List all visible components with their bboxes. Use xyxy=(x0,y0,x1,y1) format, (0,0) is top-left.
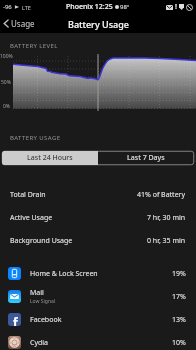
staticText: Battery Usage xyxy=(68,18,129,30)
staticText: 19% xyxy=(172,269,186,279)
staticText: 10% xyxy=(172,338,186,348)
staticText: BATTERY LEVEL xyxy=(10,42,58,50)
button[interactable]: Usage xyxy=(0,15,43,32)
staticText: Low Signal xyxy=(30,298,56,305)
button[interactable]: Background Usage xyxy=(0,229,196,252)
staticText: Phoenix 12:25 xyxy=(66,2,113,12)
staticText: Total Drain xyxy=(10,190,46,200)
button[interactable]: Last 7 Days xyxy=(98,151,194,165)
staticText: 7 hr, 30 min xyxy=(147,213,186,223)
staticText: 0% xyxy=(3,103,11,110)
staticText: 0 hr, 35 min xyxy=(147,236,186,246)
staticText: 50% xyxy=(1,79,11,86)
staticText: 13% xyxy=(172,315,186,325)
staticText: LTE xyxy=(22,4,31,11)
staticText: ! xyxy=(175,2,177,12)
staticText: Background Usage xyxy=(10,236,73,246)
staticText: Home & Lock Screen xyxy=(30,269,98,279)
staticText: 17% xyxy=(172,292,186,302)
button[interactable]: Home & Lock Screen xyxy=(0,262,196,285)
staticText: 41% of Battery xyxy=(137,190,186,200)
button[interactable]: Active Usage xyxy=(0,206,196,229)
staticText: Last 7 Days xyxy=(127,153,165,163)
staticText: -96 xyxy=(3,3,12,11)
button[interactable]: f xyxy=(0,308,196,331)
staticText: Active Usage xyxy=(10,213,53,223)
staticText: Facebook xyxy=(30,315,62,325)
button[interactable]: Last 24 Hours xyxy=(2,151,98,165)
staticText: BATTERY USAGE xyxy=(10,134,61,142)
staticText: Cydia xyxy=(30,338,49,348)
staticText: Mail xyxy=(30,288,44,298)
button[interactable]: Mail xyxy=(0,285,196,308)
staticText: 100% xyxy=(0,53,13,60)
button[interactable]: Total Drain xyxy=(0,183,196,206)
staticText: f xyxy=(13,314,18,326)
staticText: Usage xyxy=(11,18,35,29)
staticText: Last 24 Hours xyxy=(27,153,73,163)
staticText: 98° xyxy=(120,3,130,11)
button[interactable]: Cydia xyxy=(0,331,196,350)
